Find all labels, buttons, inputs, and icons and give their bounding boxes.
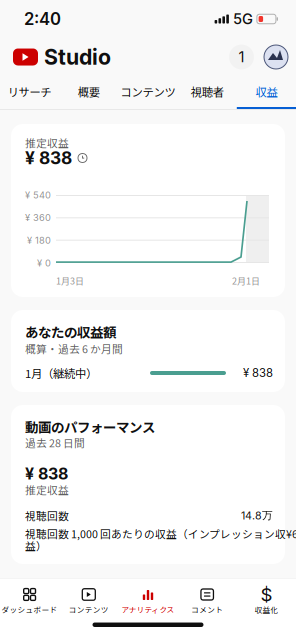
staticText: 推定収益: [25, 135, 69, 150]
staticText: コメント: [191, 604, 223, 615]
button[interactable]: 視聴者: [178, 76, 237, 109]
button[interactable]: Studio: [13, 44, 111, 70]
button[interactable]: コメント: [178, 588, 237, 615]
button[interactable]: アナリティクス: [118, 588, 178, 615]
staticText: ¥ 360: [25, 212, 51, 223]
staticText: $: [260, 583, 272, 606]
staticText: 過去 28 日間: [25, 435, 85, 450]
button[interactable]: Account: [264, 45, 288, 69]
staticText: あなたの収益額: [25, 322, 116, 341]
staticText: 1: [238, 48, 244, 66]
button[interactable]: $: [237, 588, 296, 615]
button[interactable]: ダッシュボード: [0, 588, 59, 615]
staticText: 2月1日: [232, 274, 260, 287]
staticText: 1月3日: [56, 274, 84, 287]
staticText: 2:40: [24, 9, 61, 29]
staticText: 概要: [78, 83, 100, 100]
staticText: 視聴回数: [25, 508, 69, 523]
staticText: 14.8万: [241, 509, 273, 522]
staticText: ダッシュボード: [2, 604, 58, 615]
staticText: ¥ 838: [243, 366, 273, 380]
staticText: 動画のパフォーマンス: [25, 417, 155, 436]
staticText: 視聴者: [191, 83, 224, 100]
button[interactable]: 収益: [237, 76, 296, 109]
staticText: Studio: [44, 44, 111, 70]
staticText: ¥ 838: [25, 464, 68, 483]
staticText: 益）: [25, 538, 47, 553]
button[interactable]: リサーチ: [0, 76, 59, 109]
staticText: アナリティクス: [121, 604, 174, 615]
staticText: 5G: [233, 10, 253, 28]
button[interactable]: コンテンツ: [59, 588, 118, 615]
staticText: コンテンツ: [120, 83, 175, 100]
staticText: 1月（継続中）: [25, 365, 97, 381]
staticText: ¥ 540: [25, 189, 51, 201]
button[interactable]: コンテンツ: [118, 76, 178, 109]
staticText: 推定収益: [25, 482, 69, 497]
button[interactable]: 1: [229, 44, 254, 69]
button[interactable]: 概要: [59, 76, 118, 109]
staticText: 概算・過去 6 か月間: [25, 341, 123, 356]
staticText: ¥ 180: [27, 235, 51, 246]
staticText: ¥ 838: [25, 147, 72, 168]
staticText: 収益: [255, 83, 277, 100]
staticText: コンテンツ: [69, 604, 109, 615]
staticText: 視聴回数 1,000 回あたりの収益（インプレッション収¥6: [25, 526, 296, 541]
staticText: 収益化: [254, 604, 278, 615]
staticText: ¥ 0: [37, 257, 51, 269]
staticText: リサーチ: [8, 83, 52, 100]
